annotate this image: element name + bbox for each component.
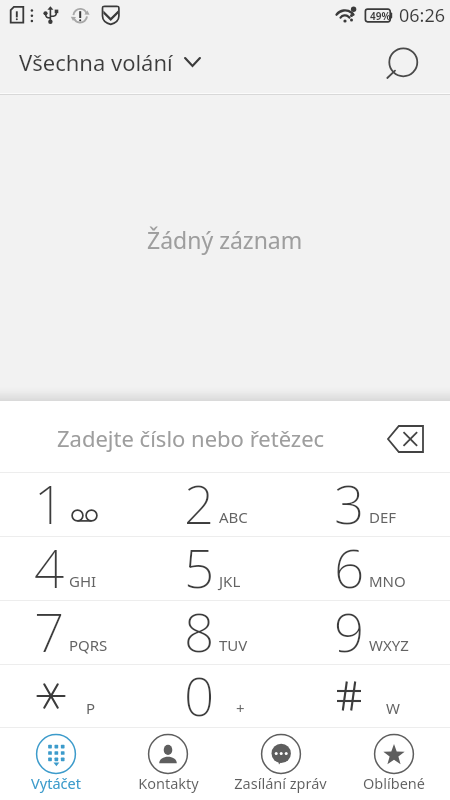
staticText: DEF bbox=[369, 507, 397, 527]
staticText: Žádný záznam bbox=[147, 224, 303, 255]
staticText: 1 bbox=[34, 467, 65, 530]
staticText: 8 bbox=[184, 595, 215, 658]
staticText: 06:26 bbox=[399, 3, 446, 28]
staticText: MNO bbox=[369, 571, 406, 591]
staticText: Kontakty bbox=[138, 773, 199, 793]
staticText: 49% bbox=[370, 9, 391, 23]
button[interactable]: Oblíbené bbox=[337, 727, 450, 800]
staticText: W bbox=[386, 698, 400, 718]
button[interactable]: 1 bbox=[0, 473, 150, 536]
button[interactable]: 9 bbox=[300, 601, 450, 664]
staticText: Zasílání zpráv bbox=[234, 773, 327, 793]
button[interactable]: 2 bbox=[150, 473, 300, 536]
button[interactable]: 0 bbox=[150, 665, 300, 727]
button[interactable]: 6 bbox=[300, 537, 450, 600]
staticText: TUV bbox=[219, 635, 248, 655]
button[interactable]: 3 bbox=[300, 473, 450, 536]
staticText: 0 bbox=[184, 659, 215, 721]
staticText: 2 bbox=[184, 467, 215, 530]
staticText: WXYZ bbox=[369, 635, 409, 655]
button[interactable]: Search bbox=[379, 39, 427, 87]
staticText: GHI bbox=[69, 571, 97, 591]
button[interactable]: Zasílání zpráv bbox=[224, 727, 337, 800]
button[interactable]: 8 bbox=[150, 601, 300, 664]
staticText: 4 bbox=[34, 531, 65, 594]
staticText: 3 bbox=[334, 467, 365, 530]
staticText: Všechna volání bbox=[19, 47, 173, 77]
button[interactable]: Kontakty bbox=[112, 727, 224, 800]
staticText: Zadejte číslo nebo řetězec bbox=[57, 423, 325, 453]
button[interactable]: P bbox=[0, 665, 150, 727]
button[interactable]: 7 bbox=[0, 601, 150, 664]
staticText: JKL bbox=[219, 571, 241, 591]
staticText: 5 bbox=[184, 531, 215, 594]
button[interactable]: Všechna volání bbox=[0, 37, 215, 87]
button[interactable]: W bbox=[300, 665, 450, 727]
staticText: + bbox=[236, 698, 245, 718]
staticText: 7 bbox=[34, 595, 65, 658]
staticText: 6 bbox=[334, 531, 365, 594]
staticText: P bbox=[86, 698, 96, 718]
button[interactable]: 4 bbox=[0, 537, 150, 600]
button[interactable]: Backspace bbox=[377, 411, 433, 467]
staticText: 9 bbox=[334, 595, 365, 658]
staticText: ABC bbox=[219, 507, 248, 527]
button[interactable]: 5 bbox=[150, 537, 300, 600]
staticText: Vytáčet bbox=[31, 773, 81, 793]
staticText: Oblíbené bbox=[363, 773, 425, 793]
button[interactable]: Vytáčet bbox=[0, 727, 112, 800]
staticText: PQRS bbox=[69, 635, 108, 655]
